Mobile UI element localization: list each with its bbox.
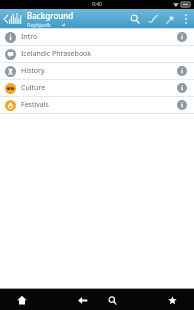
staticText: Reykjavik: [27, 21, 51, 28]
button[interactable]: Edit: [144, 9, 162, 28]
button[interactable]: Search: [102, 290, 122, 310]
staticText: Festivals: [21, 100, 49, 110]
button[interactable]: Search: [126, 9, 144, 28]
button[interactable]: Up: [2, 9, 24, 28]
button[interactable]: Info about History: [175, 64, 189, 78]
staticText: 9:40: [92, 1, 102, 8]
button[interactable]: More options: [180, 9, 192, 28]
button[interactable]: Intro: [0, 29, 194, 45]
button[interactable]: Background: [27, 10, 126, 28]
button[interactable]: Culture: [0, 80, 194, 96]
button[interactable]: Info about Festivals: [175, 98, 189, 112]
button[interactable]: Info about Intro: [175, 30, 189, 44]
staticText: Intro: [21, 32, 38, 42]
staticText: Background: [27, 10, 74, 21]
button[interactable]: Icelandic Phrasebook: [0, 46, 194, 62]
button[interactable]: History: [0, 63, 194, 79]
button[interactable]: Bookmark: [162, 9, 180, 28]
button[interactable]: Info about Culture: [175, 81, 189, 95]
staticText: History: [21, 66, 45, 76]
button[interactable]: Back: [72, 290, 92, 310]
button[interactable]: Favorites: [162, 290, 182, 310]
staticText: Icelandic Phrasebook: [21, 49, 92, 59]
staticText: Culture: [21, 83, 46, 93]
button[interactable]: Home: [12, 290, 32, 310]
button[interactable]: Festivals: [0, 97, 194, 113]
